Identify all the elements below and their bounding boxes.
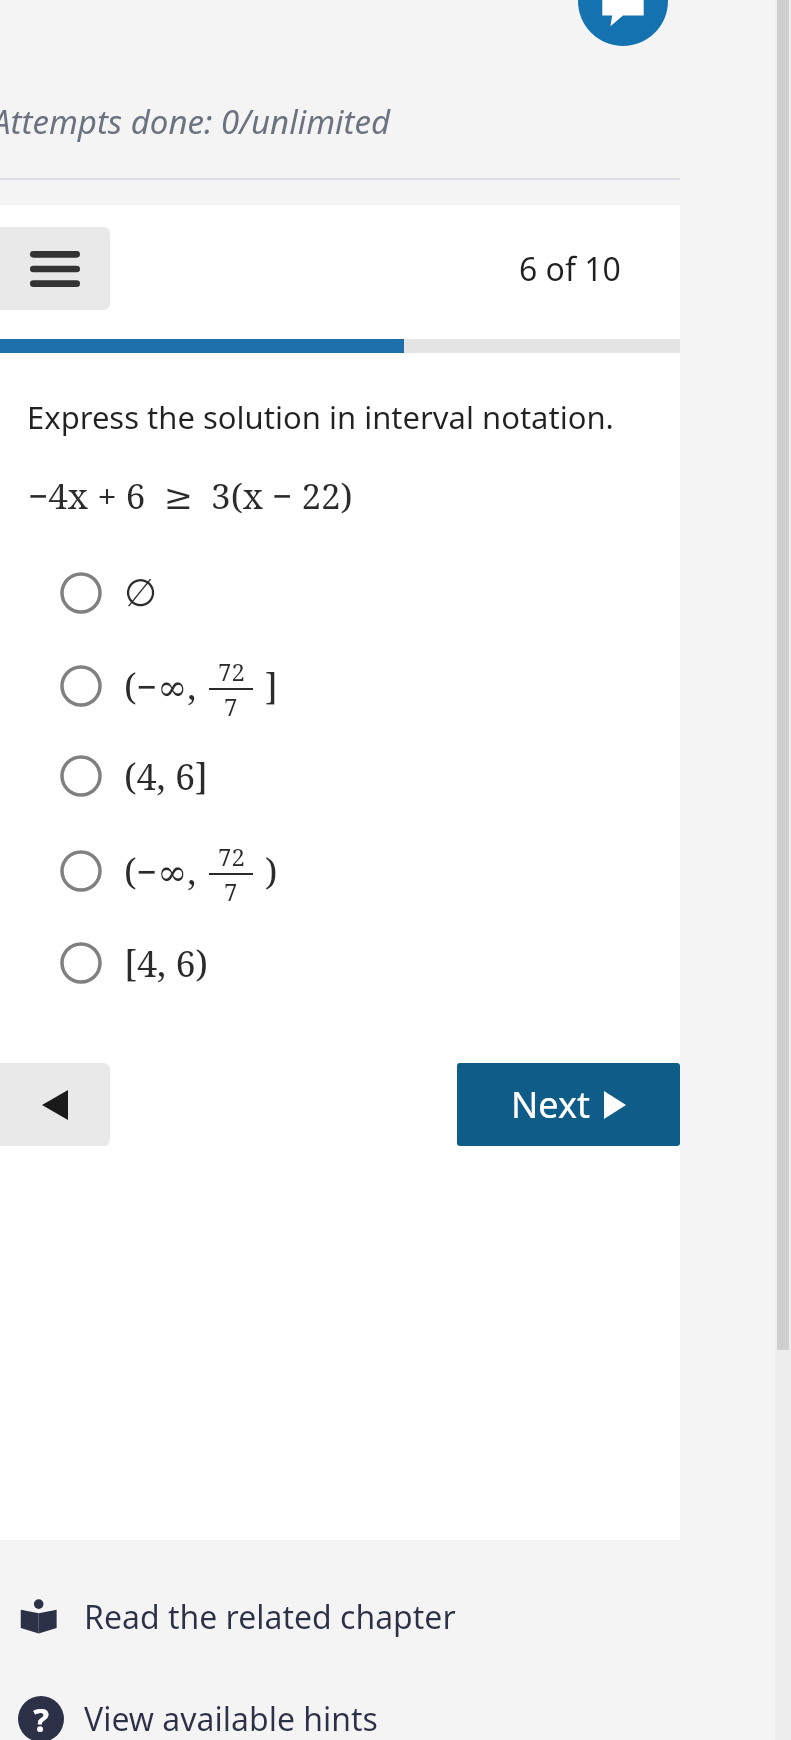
button[interactable]: Read the related chapter bbox=[18, 1578, 488, 1656]
button[interactable]: (−∞, bbox=[60, 655, 620, 717]
staticText: Attempts done: 0/unlimited bbox=[0, 99, 391, 144]
staticText: (4, 6] bbox=[124, 752, 209, 801]
button[interactable]: Previous bbox=[0, 1063, 110, 1146]
staticText: Next bbox=[511, 1080, 590, 1129]
button[interactable]: ? bbox=[18, 1680, 448, 1740]
button[interactable]: (−∞, bbox=[60, 840, 620, 902]
staticText: (−∞, bbox=[124, 662, 197, 711]
staticText: 72 bbox=[218, 655, 245, 688]
staticText: 7 bbox=[224, 875, 238, 902]
staticText: Read the related chapter bbox=[84, 1595, 456, 1639]
staticText: View available hints bbox=[84, 1697, 378, 1740]
button[interactable]: Chat bbox=[578, 0, 668, 46]
staticText: 6 of 10 bbox=[519, 247, 621, 291]
staticText: Express the solution in interval notatio… bbox=[27, 396, 614, 438]
staticText: [4, 6) bbox=[124, 939, 209, 988]
staticText: −4x + 6 ≥ 3(x − 22) bbox=[28, 472, 353, 520]
staticText: ∅ bbox=[124, 571, 158, 615]
button[interactable]: [4, 6) bbox=[60, 932, 620, 994]
button[interactable]: (4, 6] bbox=[60, 745, 620, 807]
button[interactable]: ∅ bbox=[60, 562, 620, 624]
staticText: ] bbox=[265, 662, 278, 711]
button[interactable]: Menu bbox=[0, 227, 110, 310]
staticText: 7 bbox=[224, 690, 238, 717]
staticText: (−∞, bbox=[124, 847, 197, 896]
staticText: ) bbox=[265, 847, 278, 896]
staticText: ? bbox=[33, 1697, 49, 1740]
staticText: 72 bbox=[218, 840, 245, 873]
button[interactable]: Next bbox=[457, 1063, 680, 1146]
